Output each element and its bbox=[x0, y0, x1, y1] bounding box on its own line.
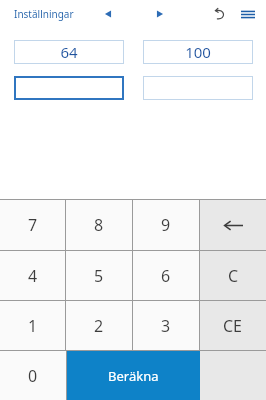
button[interactable]: 8 bbox=[66, 200, 132, 250]
button[interactable]: 7 bbox=[0, 200, 65, 250]
staticText: 6 bbox=[161, 265, 171, 287]
button[interactable]: Inställningar bbox=[14, 7, 74, 21]
button[interactable]: Previous bbox=[98, 4, 118, 24]
button[interactable]: 2 bbox=[66, 301, 132, 350]
staticText: 7 bbox=[28, 214, 38, 236]
button[interactable]: 0 bbox=[0, 351, 66, 400]
staticText: Inställningar bbox=[14, 7, 74, 21]
staticText: 64 bbox=[60, 42, 78, 62]
staticText: 100 bbox=[185, 42, 211, 62]
button[interactable]: Undo bbox=[208, 2, 232, 26]
staticText: 5 bbox=[94, 265, 104, 287]
staticText: CE bbox=[223, 315, 243, 337]
button[interactable]: 100 bbox=[143, 40, 253, 64]
staticText: 2 bbox=[94, 315, 104, 337]
button[interactable]: C bbox=[200, 251, 266, 300]
staticText: 0 bbox=[28, 365, 38, 387]
button[interactable] bbox=[14, 76, 124, 100]
button[interactable]: 6 bbox=[133, 251, 199, 300]
staticText: Beräkna bbox=[108, 367, 159, 385]
button[interactable]: Menu bbox=[236, 2, 260, 26]
button[interactable]: Backspace bbox=[200, 200, 266, 250]
staticText: 1 bbox=[28, 315, 38, 337]
button[interactable]: 4 bbox=[0, 251, 65, 300]
button[interactable]: 3 bbox=[133, 301, 199, 350]
button[interactable]: Beräkna bbox=[67, 351, 200, 400]
staticText: 3 bbox=[161, 315, 171, 337]
button[interactable]: 1 bbox=[0, 301, 65, 350]
button[interactable]: 5 bbox=[66, 251, 132, 300]
button[interactable]: 9 bbox=[133, 200, 199, 250]
button[interactable]: Next bbox=[150, 4, 170, 24]
staticText: 8 bbox=[94, 214, 104, 236]
staticText: C bbox=[228, 265, 239, 287]
staticText: 9 bbox=[161, 214, 171, 236]
button[interactable]: 64 bbox=[14, 40, 124, 64]
button[interactable]: CE bbox=[200, 301, 266, 350]
button[interactable] bbox=[143, 76, 253, 100]
staticText: 4 bbox=[28, 265, 38, 287]
